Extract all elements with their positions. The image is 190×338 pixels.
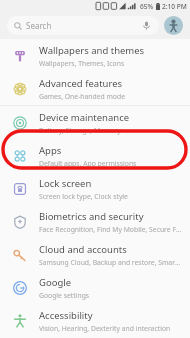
staticText: Device maintenance: [39, 111, 130, 124]
staticText: 2:10 PM: [162, 2, 187, 11]
staticText: Vision, Hearing, Dexterity and interacti…: [39, 324, 171, 333]
staticText: Advanced features: [39, 77, 123, 90]
staticText: Search: [26, 20, 52, 31]
staticText: Face Recognition, Find My Mobile, Secure…: [39, 225, 182, 234]
staticText: Accessibility: [39, 309, 93, 322]
staticText: Wallpapers and themes: [39, 44, 145, 57]
staticText: Biometrics and security: [39, 210, 144, 223]
staticText: Default apps, App permissions: [39, 159, 137, 168]
staticText: 65%: [140, 2, 154, 11]
staticText: Wallpapers, Themes, Icons: [39, 59, 125, 68]
button[interactable]: Biometrics and security: [0, 205, 190, 238]
button[interactable]: Profile: [164, 16, 183, 35]
button[interactable]: Advanced features: [0, 72, 190, 105]
staticText: Battery, Storage, Memory: [39, 126, 121, 135]
button[interactable]: Google: [0, 271, 190, 304]
staticText: Screen lock type, Clock style: [39, 192, 128, 201]
staticText: Samsung Cloud, Backup and restore, Smart…: [39, 258, 182, 267]
button[interactable]: Accessibility: [0, 304, 190, 337]
staticText: Apps: [39, 144, 62, 157]
staticText: Games, One-handed mode: [39, 92, 125, 101]
staticText: Google: [39, 276, 72, 289]
staticText: Cloud and accounts: [39, 243, 127, 256]
staticText: Google settings: [39, 291, 90, 300]
button[interactable]: Wallpapers and themes: [0, 39, 190, 72]
button[interactable]: Lock screen: [0, 172, 190, 205]
staticText: Lock screen: [39, 177, 92, 190]
button[interactable]: Apps: [0, 139, 190, 172]
button[interactable]: Cloud and accounts: [0, 238, 190, 271]
button[interactable]: Voice search: [141, 20, 152, 31]
button[interactable]: Device maintenance: [0, 106, 190, 139]
button[interactable]: Search: [7, 16, 159, 35]
